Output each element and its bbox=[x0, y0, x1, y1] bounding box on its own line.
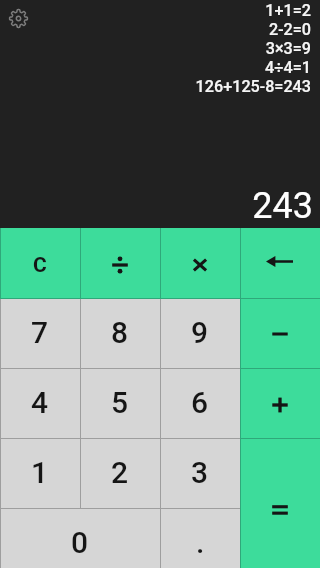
staticText: 8 bbox=[111, 315, 129, 350]
button[interactable]: 7 bbox=[0, 298, 80, 368]
staticText: . bbox=[196, 525, 205, 560]
button[interactable]: 8 bbox=[80, 298, 160, 368]
button[interactable]: 4 bbox=[0, 368, 80, 438]
staticText: 1 bbox=[31, 455, 49, 490]
button[interactable]: 1 bbox=[0, 438, 80, 508]
button[interactable]: Clear bbox=[0, 228, 80, 298]
staticText: 7 bbox=[31, 315, 49, 350]
button[interactable]: 0 bbox=[0, 508, 160, 568]
staticText: 0 bbox=[71, 525, 89, 560]
button[interactable]: Divide bbox=[80, 228, 160, 298]
button[interactable]: Multiply bbox=[160, 228, 240, 298]
staticText: 6 bbox=[191, 385, 209, 420]
button[interactable]: Minus bbox=[240, 298, 320, 368]
button[interactable]: 2 bbox=[80, 438, 160, 508]
staticText: 2 bbox=[111, 455, 129, 490]
staticText: C bbox=[33, 253, 47, 278]
staticText: 3 bbox=[191, 455, 209, 490]
staticText: 243 bbox=[0, 185, 313, 227]
staticText: 1+1=2 2-2=0 3×3=9 4÷4=1 126+125-8=243 bbox=[0, 1, 311, 96]
staticText: 4 bbox=[31, 385, 49, 420]
button[interactable]: 3 bbox=[160, 438, 240, 508]
button[interactable]: . bbox=[160, 508, 240, 568]
staticText: 9 bbox=[191, 315, 209, 350]
button[interactable]: Equals bbox=[240, 438, 320, 568]
button[interactable]: 9 bbox=[160, 298, 240, 368]
button[interactable]: Plus bbox=[240, 368, 320, 438]
button[interactable]: 6 bbox=[160, 368, 240, 438]
staticText: 5 bbox=[111, 385, 129, 420]
button[interactable]: Settings bbox=[5, 5, 31, 31]
button[interactable]: Backspace bbox=[240, 228, 320, 298]
button[interactable]: 5 bbox=[80, 368, 160, 438]
